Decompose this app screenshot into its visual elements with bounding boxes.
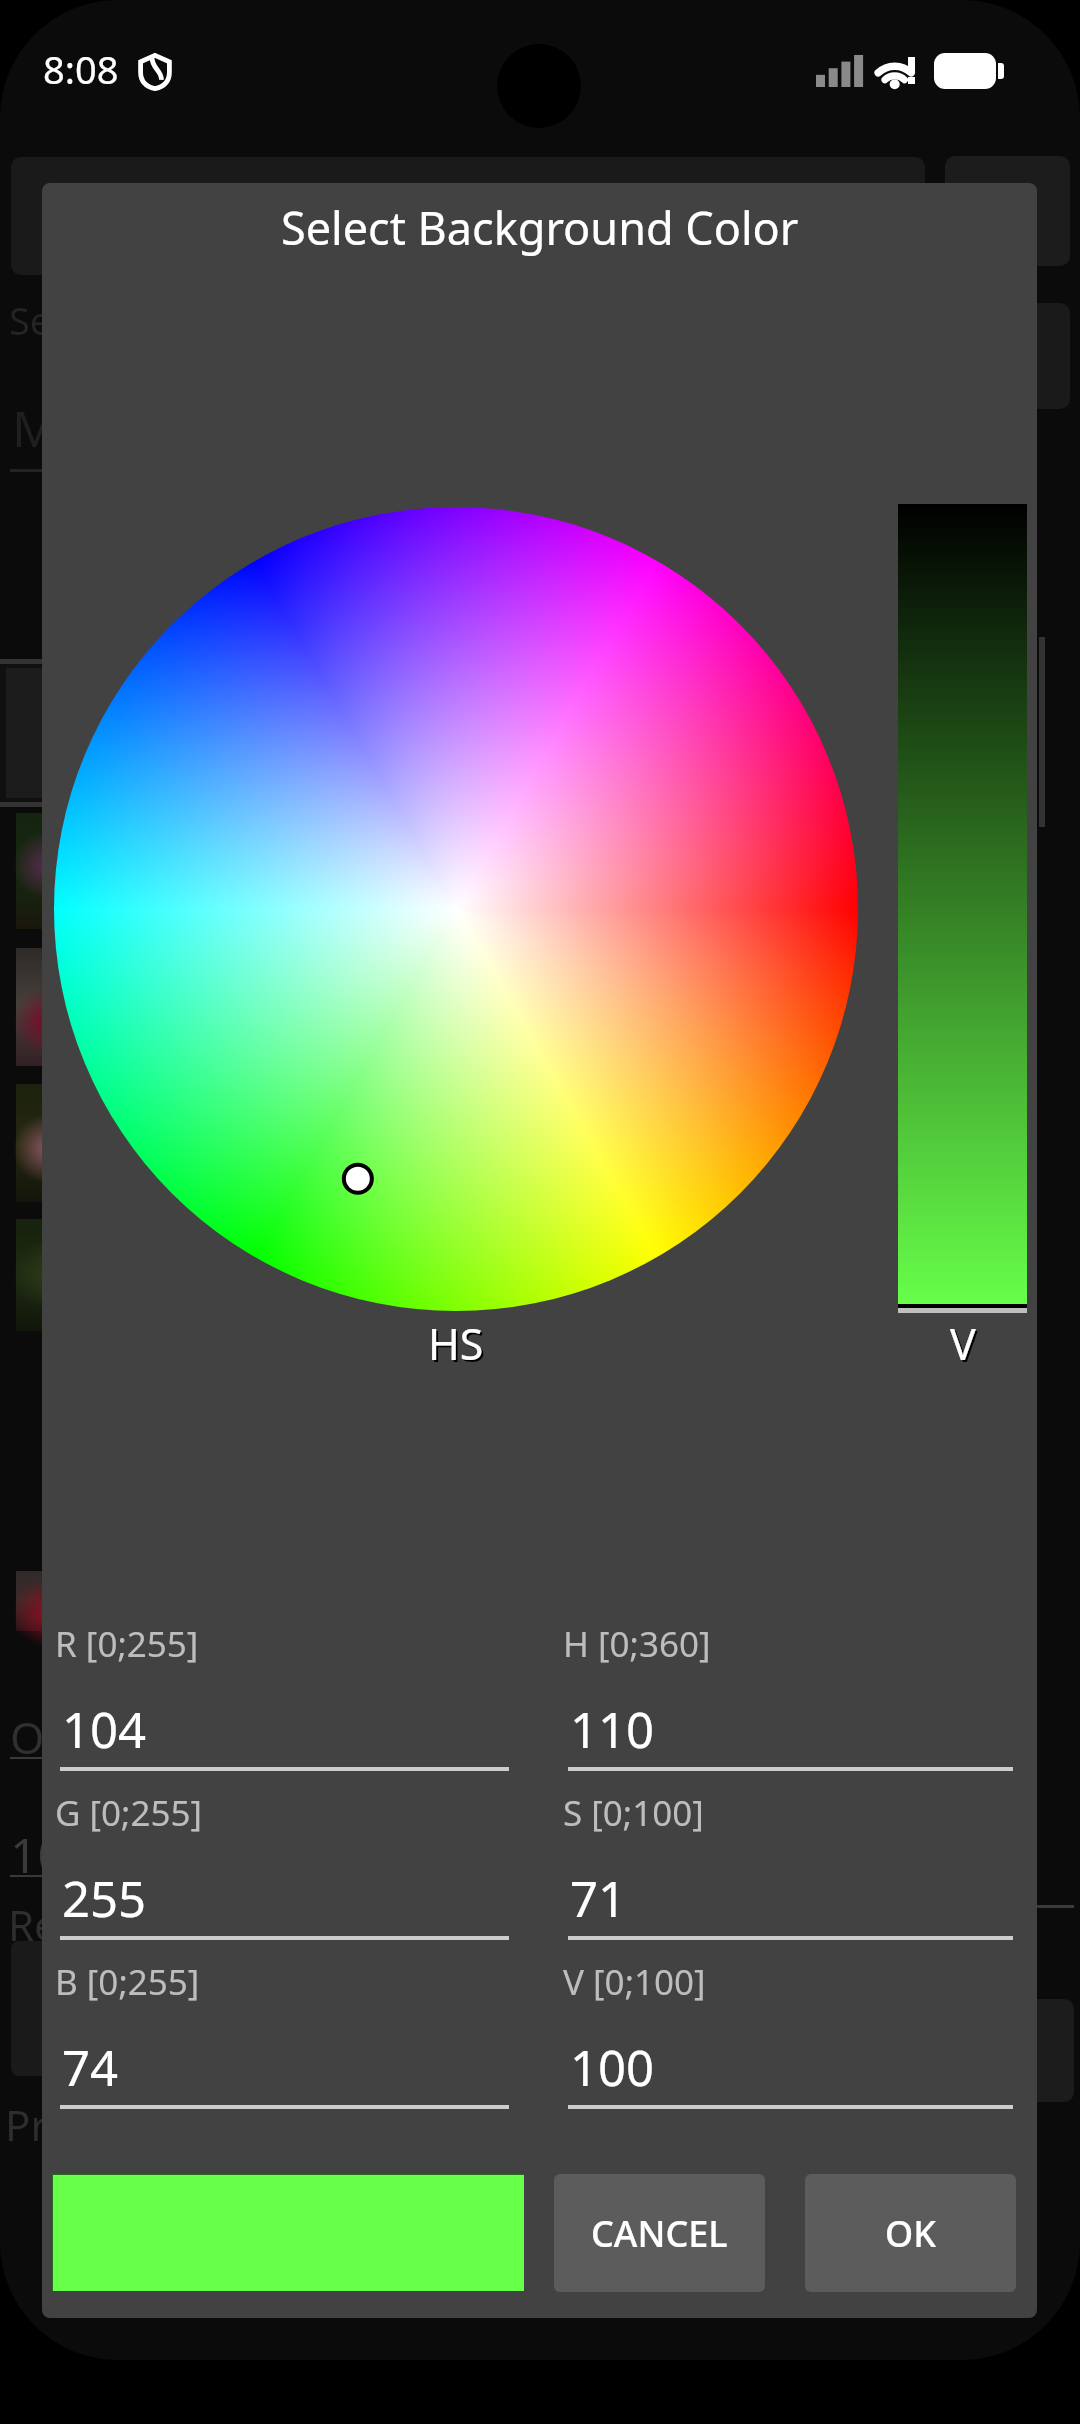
staticText: Se [9, 294, 52, 346]
staticText: B [0;255] [55, 1958, 200, 2006]
staticText: V [952, 1316, 978, 1375]
staticText: 110 [570, 1696, 655, 1763]
button[interactable]: 74 [60, 2017, 509, 2109]
button[interactable]: 104 [60, 1679, 509, 1771]
button[interactable]: 110 [568, 1679, 1013, 1771]
staticText: Re [8, 1896, 58, 1953]
button[interactable]: Value slider [898, 504, 1027, 1316]
staticText: 74 [62, 2034, 119, 2101]
staticText: O [10, 1707, 45, 1767]
staticText: V [0;100] [563, 1958, 706, 2006]
staticText: OK [885, 2209, 936, 2258]
staticText: 100 [570, 2034, 655, 2101]
staticText: 71 [570, 1865, 627, 1932]
staticText: M [12, 394, 58, 462]
staticText: Pro [5, 2096, 73, 2153]
button[interactable]: 100 [568, 2017, 1013, 2109]
staticText: Select Background Color [281, 197, 799, 258]
button[interactable]: CANCEL [554, 2174, 765, 2292]
staticText: CANCEL [591, 2209, 728, 2258]
staticText: S [0;100] [563, 1789, 704, 1837]
staticText: HS [428, 1314, 484, 1373]
staticText: G [0;255] [55, 1789, 203, 1837]
staticText: V [950, 1314, 976, 1373]
staticText: R [0;255] [55, 1620, 199, 1668]
staticText: 255 [62, 1865, 147, 1932]
staticText: H [0;360] [563, 1620, 711, 1668]
staticText: HS [430, 1316, 486, 1375]
button[interactable]: 255 [60, 1848, 509, 1940]
button[interactable]: Selected colour preview [52, 2174, 524, 2291]
button[interactable]: Hue saturation wheel [54, 507, 858, 1311]
button[interactable]: 71 [568, 1848, 1013, 1940]
staticText: 10 [10, 1822, 65, 1887]
staticText: 104 [62, 1696, 147, 1763]
staticText: 8:08 [43, 43, 119, 95]
button[interactable]: OK [805, 2174, 1016, 2292]
